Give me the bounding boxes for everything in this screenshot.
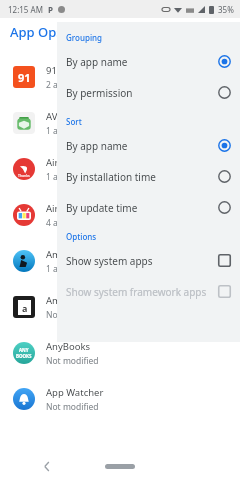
button[interactable]: ANY xyxy=(0,330,240,376)
button[interactable]: By app name xyxy=(57,130,240,161)
staticText: Show system framework apps xyxy=(66,285,218,299)
staticText: 1 app modified xyxy=(46,263,107,275)
staticText: Amazon Kindle xyxy=(46,248,113,261)
button[interactable]: AirScreen TV xyxy=(0,192,240,238)
staticText: 12:15 AM xyxy=(8,4,43,15)
staticText: BOOKS xyxy=(16,353,32,359)
staticText: By permission xyxy=(66,86,218,100)
button[interactable]: By app name xyxy=(57,46,240,77)
button[interactable]: By update time xyxy=(57,192,240,223)
staticText: Options xyxy=(66,231,97,242)
staticText: AVG Cleaner xyxy=(46,110,101,123)
staticText: 1 app modified xyxy=(46,171,107,183)
button[interactable]: Home xyxy=(105,464,135,469)
staticText: Not modified xyxy=(46,355,99,367)
staticText: Amazon Shopping xyxy=(46,294,128,307)
staticText: Not modified xyxy=(46,401,99,413)
staticText: 4 apps modified xyxy=(46,217,111,229)
button[interactable]: By permission xyxy=(57,77,240,108)
staticText: Grouping xyxy=(66,32,103,43)
button[interactable]: Back xyxy=(36,455,58,477)
staticText: P xyxy=(48,4,53,15)
staticText: ANY xyxy=(19,347,29,353)
button[interactable]: By installation time xyxy=(57,161,240,192)
button[interactable]: Thanks xyxy=(0,146,240,192)
button[interactable]: App Watcher xyxy=(0,376,240,422)
staticText: Airtel Thanks xyxy=(46,156,105,169)
staticText: By app name xyxy=(66,139,218,153)
staticText: AnyBooks xyxy=(46,340,91,353)
staticText: Sort xyxy=(66,116,82,127)
button[interactable]: Amazon Kindle xyxy=(0,238,240,284)
staticText: App Ops xyxy=(10,23,63,41)
staticText: 91 Assistant xyxy=(46,64,100,77)
button[interactable]: AVG Cleaner xyxy=(0,100,240,146)
staticText: 35% xyxy=(218,4,234,15)
staticText: a xyxy=(22,302,28,314)
button[interactable]: Show system apps xyxy=(57,245,240,276)
staticText: Thanks xyxy=(18,173,30,178)
staticText: By app name xyxy=(66,55,218,69)
button[interactable]: Show system framework apps xyxy=(57,276,240,307)
staticText: 1 app modified xyxy=(46,125,107,137)
button[interactable]: a xyxy=(0,284,240,330)
staticText: By update time xyxy=(66,201,218,215)
staticText: Show system apps xyxy=(66,254,218,268)
staticText: AirScreen TV xyxy=(46,202,102,215)
button[interactable]: 91 xyxy=(0,54,240,100)
staticText: 91 xyxy=(18,70,31,85)
staticText: Not modified xyxy=(46,309,99,321)
staticText: App Watcher xyxy=(46,386,104,399)
staticText: By installation time xyxy=(66,170,218,184)
staticText: 2 apps modified xyxy=(46,79,111,91)
